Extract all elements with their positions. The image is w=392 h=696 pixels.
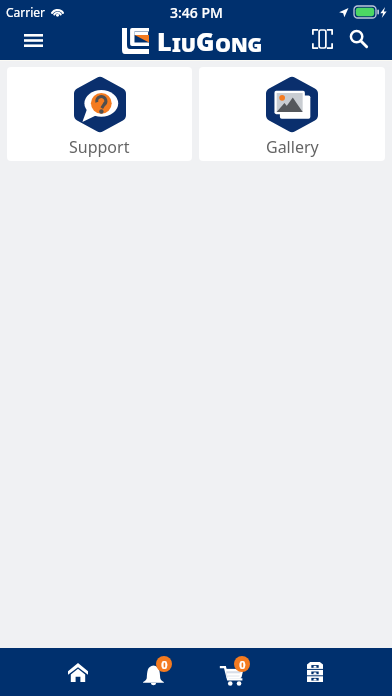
staticText: 0 xyxy=(239,657,246,672)
staticText: IU xyxy=(172,31,196,58)
staticText: ONG xyxy=(215,31,263,58)
button[interactable]: Home xyxy=(38,648,117,696)
button[interactable]: Notifications xyxy=(117,648,196,696)
staticText: 0 xyxy=(161,657,168,672)
staticText: Support xyxy=(69,136,130,158)
button[interactable]: Scan xyxy=(307,23,338,54)
button[interactable]: Parts xyxy=(275,648,354,696)
button[interactable]: Search xyxy=(343,23,374,54)
button[interactable]: Support xyxy=(7,67,192,161)
staticText: Gallery xyxy=(266,136,319,158)
staticText: 3:46 PM xyxy=(170,3,223,22)
button[interactable]: Gallery xyxy=(199,67,385,161)
staticText: G xyxy=(196,24,215,58)
button[interactable]: Cart xyxy=(196,648,275,696)
button[interactable]: Menu xyxy=(17,24,49,56)
staticText: Carrier xyxy=(6,4,46,20)
staticText: L xyxy=(157,24,172,58)
